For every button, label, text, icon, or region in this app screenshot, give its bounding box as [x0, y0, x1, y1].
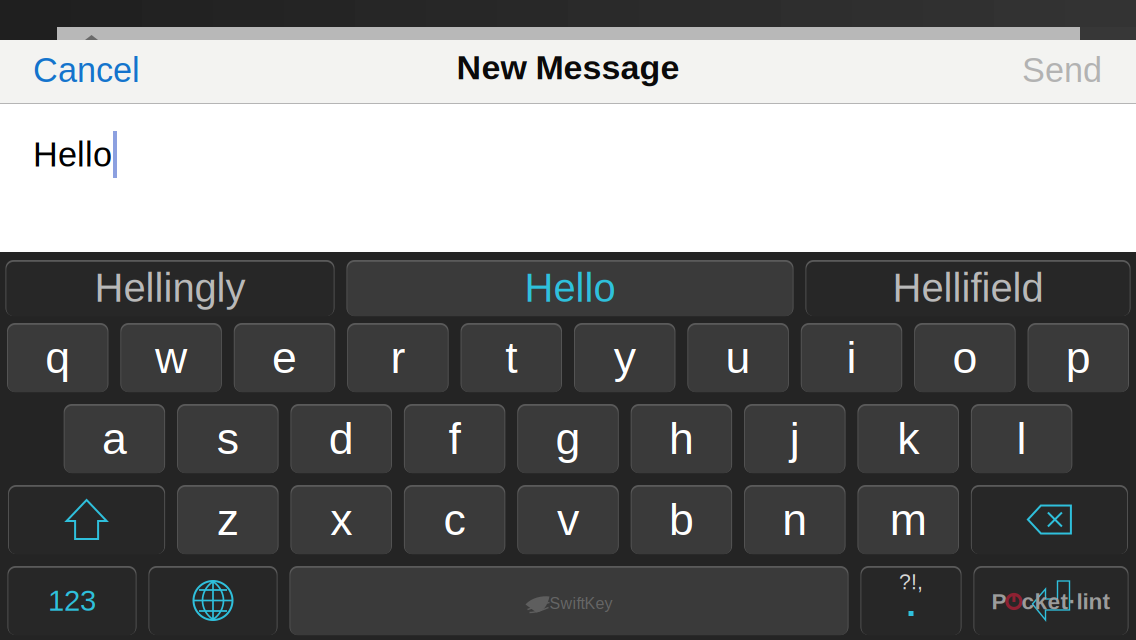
button[interactable]: j	[744, 404, 845, 473]
button[interactable]: l	[971, 404, 1072, 473]
button[interactable]: u	[687, 323, 789, 392]
button[interactable]: Delete	[971, 485, 1128, 554]
staticText: Hello	[33, 135, 112, 174]
button[interactable]: x	[290, 485, 392, 554]
button[interactable]: a	[64, 404, 165, 473]
staticText: P	[991, 589, 1006, 614]
button[interactable]: space	[289, 566, 848, 635]
staticText: lint	[1076, 589, 1110, 614]
button[interactable]: b	[631, 485, 732, 554]
button[interactable]: Return	[973, 566, 1128, 635]
staticText: SwiftKey	[549, 595, 612, 612]
button[interactable]: t	[461, 323, 562, 392]
staticText: l	[1017, 413, 1027, 463]
staticText: z	[217, 494, 239, 544]
staticText: c	[444, 494, 466, 544]
staticText: h	[669, 413, 694, 463]
staticText: k	[897, 413, 919, 463]
button[interactable]: 123	[7, 566, 136, 635]
button[interactable]: Shift	[8, 485, 165, 554]
staticText: Send	[1022, 51, 1102, 89]
staticText: d	[329, 413, 354, 463]
staticText: a	[102, 413, 127, 463]
button[interactable]: p	[1028, 323, 1129, 392]
button[interactable]: o	[914, 323, 1016, 392]
staticText: v	[557, 494, 579, 544]
staticText: Hellingly	[94, 266, 245, 310]
staticText: Cancel	[33, 51, 140, 89]
staticText: u	[726, 332, 751, 382]
button[interactable]: y	[574, 323, 675, 392]
button[interactable]: c	[404, 485, 505, 554]
button[interactable]: r	[347, 323, 449, 392]
button[interactable]: w	[120, 323, 222, 392]
staticText: b	[669, 494, 694, 544]
staticText: New Message	[456, 48, 679, 86]
staticText: y	[614, 332, 636, 382]
button[interactable]: Hello	[346, 260, 793, 316]
button[interactable]: ?!,	[860, 566, 961, 635]
button[interactable]: Next keyboard	[148, 566, 277, 635]
staticText: e	[272, 332, 297, 382]
staticText: q	[45, 332, 70, 382]
button[interactable]: f	[404, 404, 505, 473]
staticText: m	[890, 494, 927, 544]
button[interactable]: q	[7, 323, 108, 392]
button[interactable]: Hellingly	[5, 260, 334, 316]
button[interactable]: g	[517, 404, 619, 473]
staticText: t	[505, 332, 517, 382]
button[interactable]: d	[290, 404, 392, 473]
staticText: o	[952, 332, 977, 382]
staticText: x	[330, 494, 352, 544]
staticText: r	[390, 332, 405, 382]
button[interactable]: n	[744, 485, 845, 554]
staticText: f	[449, 413, 461, 463]
button[interactable]: e	[234, 323, 335, 392]
button[interactable]: k	[857, 404, 959, 473]
staticText: j	[790, 413, 800, 463]
staticText: i	[846, 332, 856, 382]
staticText: n	[782, 494, 807, 544]
button[interactable]: v	[517, 485, 619, 554]
staticText: Hellifield	[892, 266, 1043, 310]
button[interactable]: s	[177, 404, 278, 473]
staticText: g	[555, 413, 580, 463]
button[interactable]: i	[801, 323, 902, 392]
staticText: s	[217, 413, 239, 463]
staticText: w	[155, 332, 187, 382]
staticText: cket	[1021, 589, 1068, 614]
staticText: p	[1066, 332, 1091, 382]
staticText: 123	[48, 584, 96, 617]
staticText: ?!,	[899, 570, 923, 594]
staticText: Hello	[524, 266, 615, 310]
button[interactable]: z	[177, 485, 278, 554]
button[interactable]: Cancel	[0, 40, 162, 104]
button[interactable]: m	[857, 485, 959, 554]
button[interactable]: h	[631, 404, 732, 473]
button[interactable]: Hellifield	[805, 260, 1130, 316]
button[interactable]: Send	[1000, 40, 1136, 104]
staticText: ·	[1068, 589, 1076, 614]
